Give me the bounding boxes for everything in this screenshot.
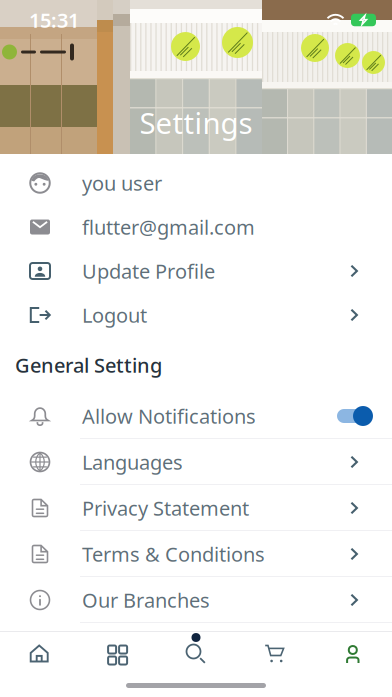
staticText: Settings bbox=[139, 103, 252, 142]
staticText: flutter@gmail.com bbox=[82, 214, 255, 240]
button[interactable]: Allow Notifications bbox=[334, 403, 374, 429]
button[interactable]: Terms & Conditions bbox=[0, 531, 392, 577]
button[interactable]: Languages bbox=[0, 439, 392, 485]
button[interactable]: Allow Notifications bbox=[0, 393, 392, 439]
button[interactable]: Logout bbox=[0, 293, 392, 337]
staticText: Update Profile bbox=[82, 258, 215, 284]
button[interactable]: Profile bbox=[314, 632, 392, 676]
button[interactable]: Search bbox=[157, 632, 235, 676]
staticText: Allow Notifications bbox=[82, 403, 256, 429]
button[interactable]: Home bbox=[0, 632, 78, 676]
button[interactable]: Cart bbox=[235, 632, 314, 676]
staticText: Privacy Statement bbox=[82, 495, 249, 521]
staticText: Terms & Conditions bbox=[82, 541, 265, 567]
button[interactable]: Categories bbox=[78, 632, 157, 676]
button[interactable]: Privacy Statement bbox=[0, 485, 392, 531]
button[interactable]: flutter@gmail.com bbox=[0, 205, 392, 249]
staticText: you user bbox=[82, 170, 162, 196]
button[interactable]: Update Profile bbox=[0, 249, 392, 293]
staticText: General Setting bbox=[15, 352, 162, 378]
staticText: Our Branches bbox=[82, 587, 210, 613]
staticText: Logout bbox=[82, 302, 147, 328]
button[interactable]: Our Branches bbox=[0, 577, 392, 623]
staticText: 15:31 bbox=[29, 7, 79, 33]
staticText: Languages bbox=[82, 449, 183, 475]
button[interactable]: you user bbox=[0, 161, 392, 205]
